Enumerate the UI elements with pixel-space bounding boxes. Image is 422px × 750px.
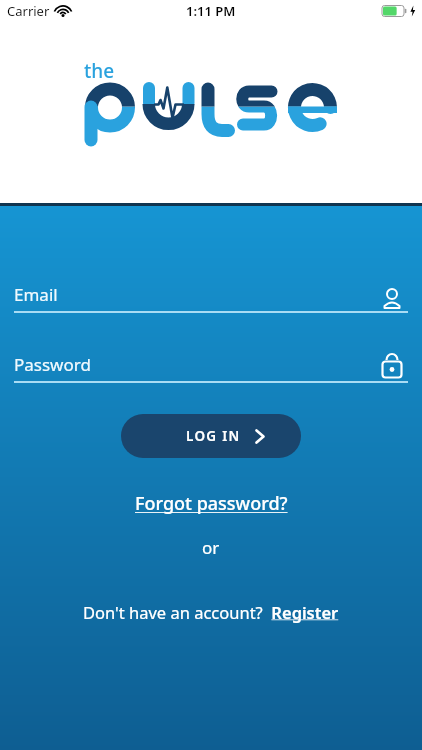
button[interactable]: Email bbox=[14, 279, 408, 313]
staticText: the bbox=[84, 58, 115, 84]
staticText: or bbox=[202, 536, 220, 559]
button[interactable]: Password bbox=[14, 349, 408, 383]
button[interactable]: Don't have an account? Register bbox=[83, 601, 339, 623]
staticText: 1:11 PM bbox=[186, 2, 236, 20]
button[interactable]: LOG IN bbox=[121, 414, 301, 458]
staticText: Password bbox=[14, 353, 91, 376]
staticText: Email bbox=[14, 283, 58, 306]
staticText: Carrier bbox=[7, 2, 50, 20]
button[interactable]: Forgot password? bbox=[135, 491, 288, 516]
staticText: LOG IN bbox=[186, 427, 241, 445]
